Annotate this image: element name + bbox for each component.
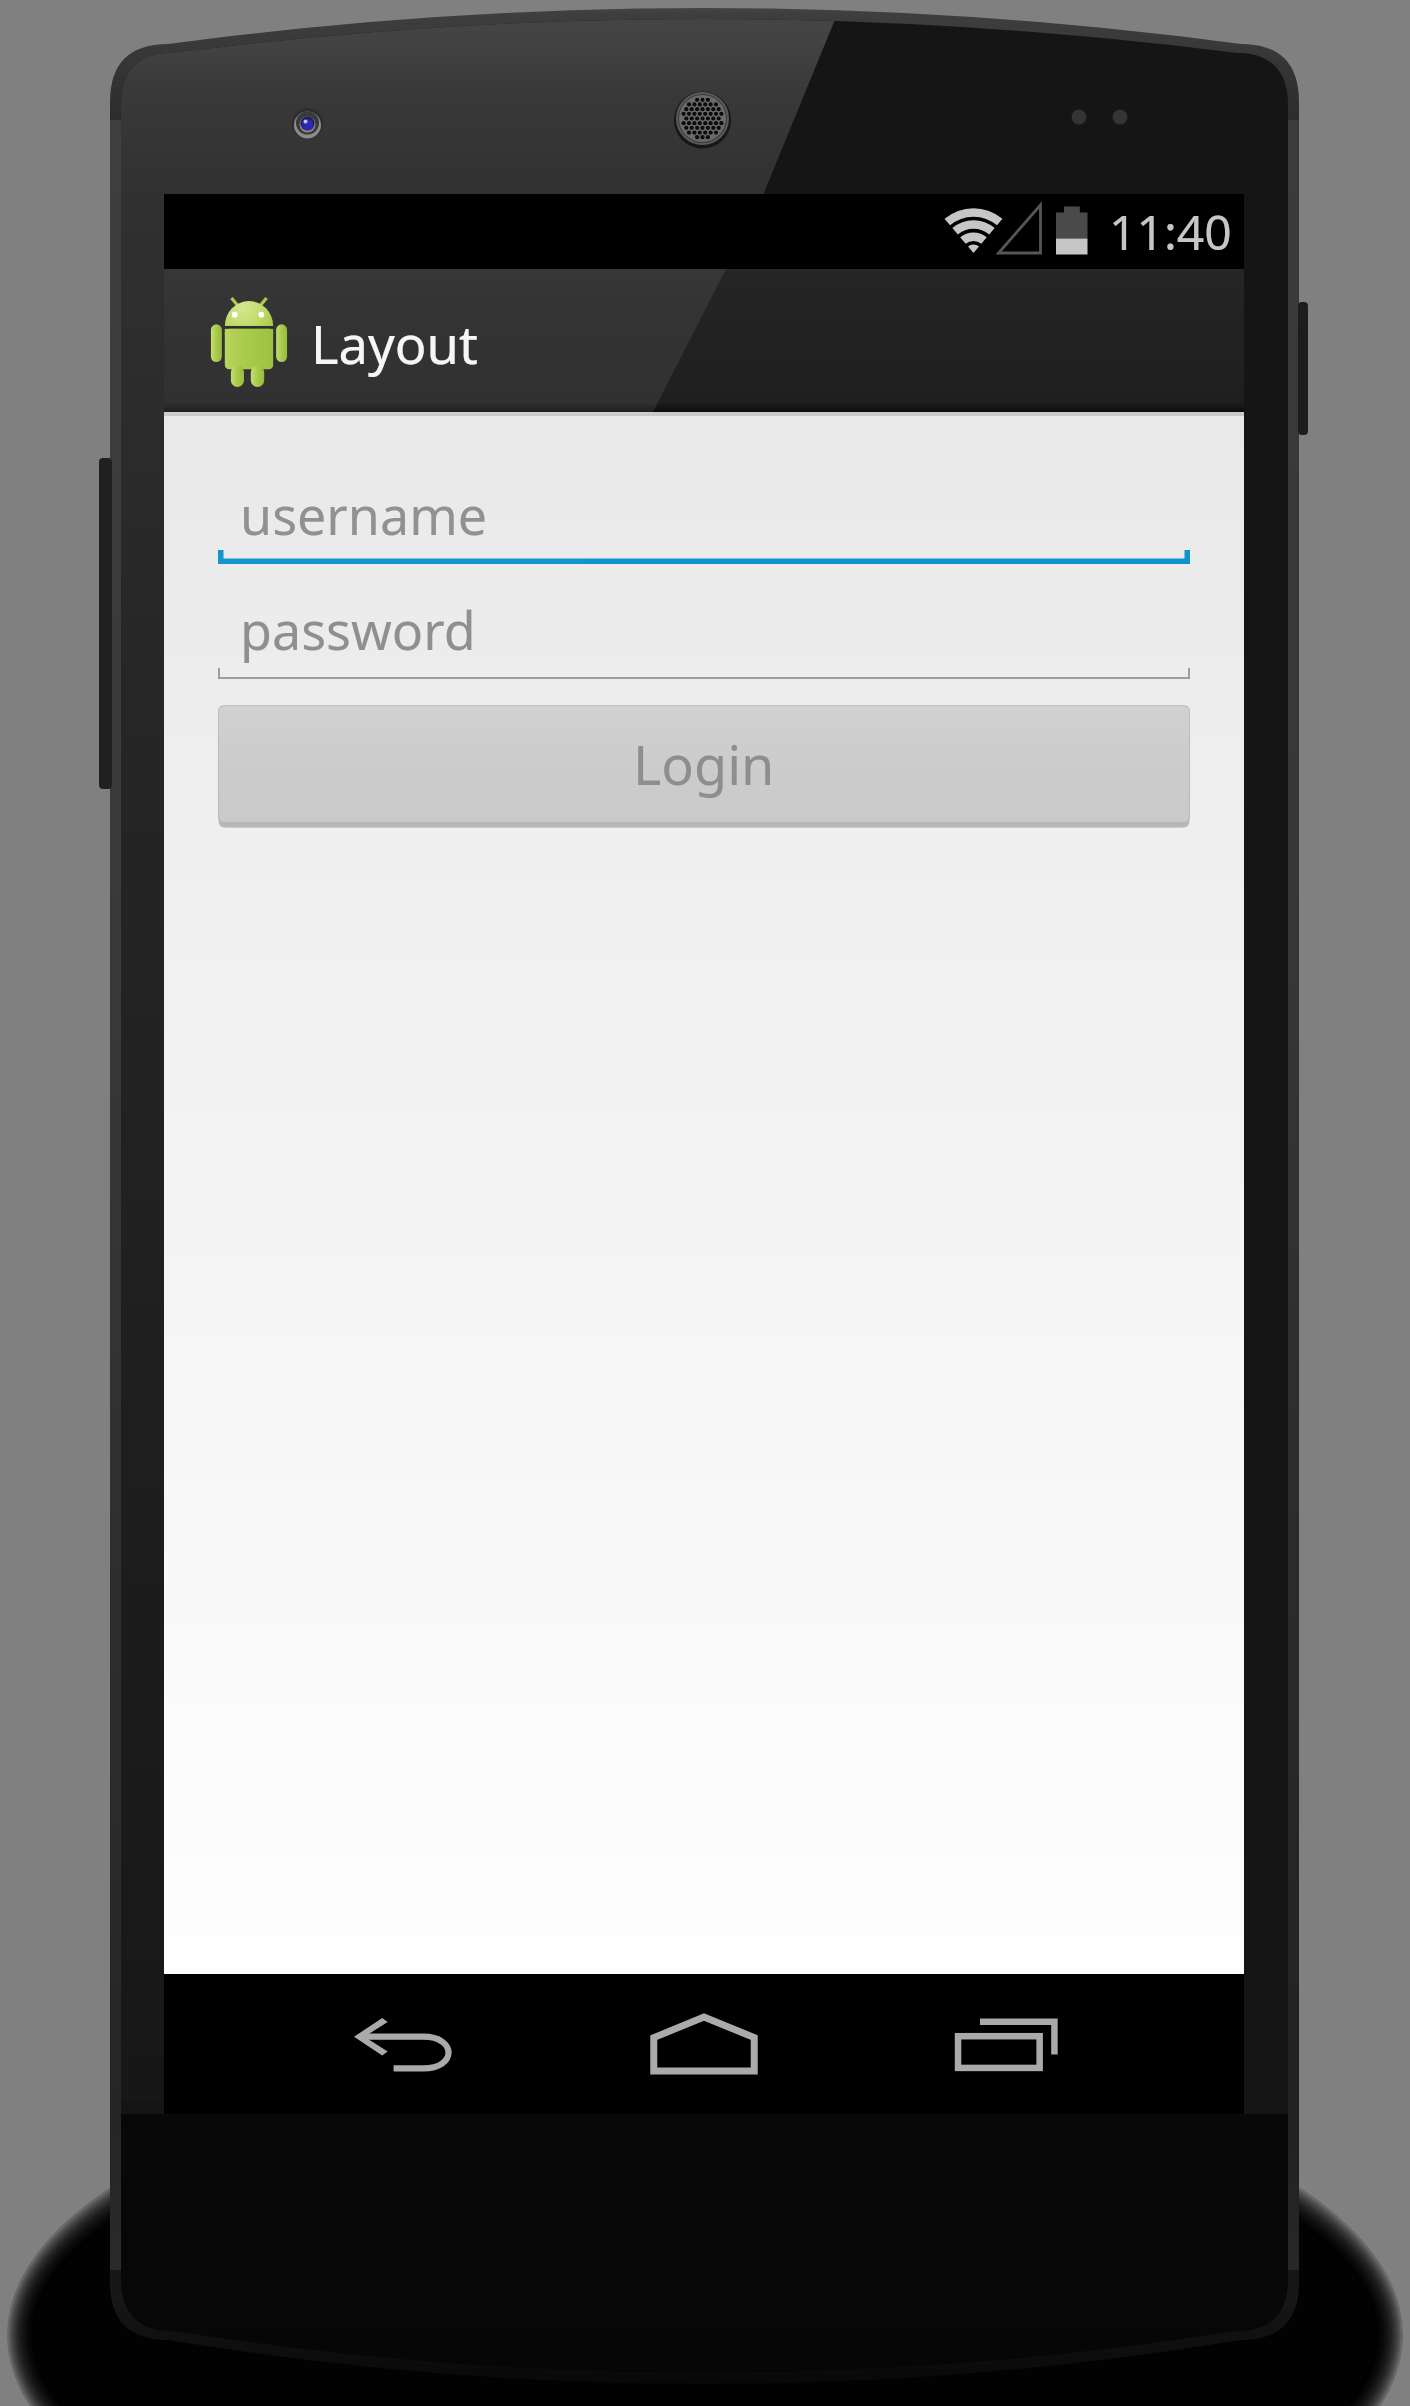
button[interactable]: Recent apps [907, 1974, 1107, 2114]
button[interactable]: password [218, 564, 1190, 679]
staticText: password [240, 594, 476, 665]
button[interactable]: username [218, 454, 1190, 564]
staticText: Login [633, 727, 775, 801]
button[interactable]: Home [604, 1974, 804, 2114]
staticText: 11:40 [1109, 199, 1232, 264]
staticText: Layout [311, 308, 478, 380]
staticText: username [240, 479, 488, 550]
button[interactable]: Login [218, 705, 1190, 828]
button[interactable]: Back [303, 1974, 503, 2114]
